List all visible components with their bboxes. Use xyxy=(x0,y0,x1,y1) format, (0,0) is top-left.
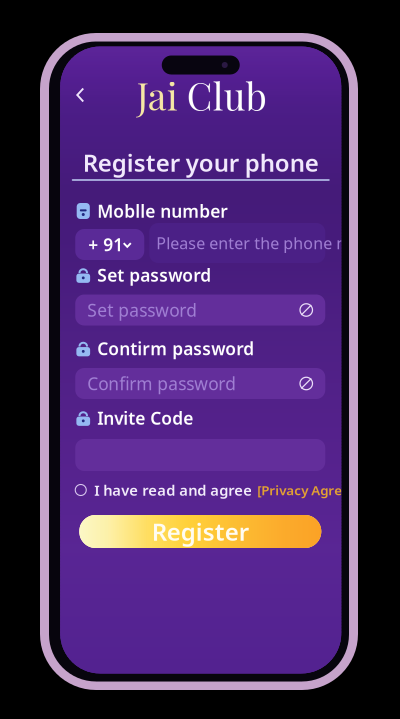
staticText: Moblle number xyxy=(97,199,228,222)
button[interactable]: Set password xyxy=(75,294,325,325)
staticText: Jai xyxy=(137,70,178,120)
staticText: Club xyxy=(178,70,267,120)
button[interactable]: I have read and agree xyxy=(75,482,325,498)
staticText: Contirm password xyxy=(97,337,254,360)
staticText: Register xyxy=(152,516,249,547)
staticText: Register your phone xyxy=(83,147,319,178)
staticText: Invite Code xyxy=(97,406,193,429)
staticText: [Privacy Agreament ] xyxy=(257,481,392,499)
staticText: Confirm password xyxy=(87,372,236,395)
button[interactable]: + 91 xyxy=(75,229,144,260)
staticText: + 91 xyxy=(88,233,123,256)
button[interactable]: Back xyxy=(65,79,97,111)
button[interactable]: Confirm password xyxy=(75,368,325,399)
staticText: Set password xyxy=(87,298,197,321)
button[interactable]: Please enter the phone number xyxy=(149,223,325,263)
staticText: Please enter the phone number xyxy=(156,232,397,254)
button[interactable]: Register xyxy=(79,515,321,548)
staticText: Set password xyxy=(97,263,211,286)
staticText: I have read and agree xyxy=(94,480,252,500)
